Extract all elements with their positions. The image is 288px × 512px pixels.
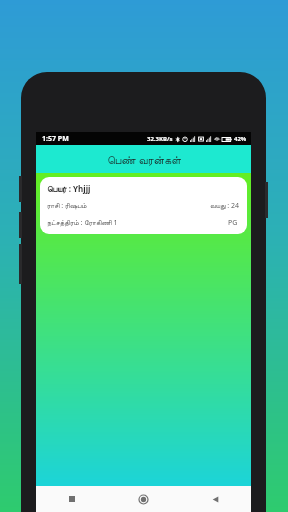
staticText: வயது : 24 bbox=[210, 201, 240, 211]
button[interactable]: பெயர் : Yhjjj bbox=[40, 177, 247, 234]
staticText: பெண் வரன்கள் bbox=[107, 152, 181, 167]
button[interactable]: Home bbox=[107, 486, 179, 512]
button[interactable]: Back bbox=[179, 486, 251, 512]
staticText: நட்சத்திரம் : ரோகிணி 1 bbox=[47, 218, 118, 228]
staticText: ராசி : ரிஷபம் bbox=[47, 201, 87, 211]
staticText: பெயர் : Yhjjj bbox=[47, 183, 91, 194]
staticText: 42% bbox=[234, 135, 247, 143]
staticText: 1:57 PM bbox=[42, 134, 69, 144]
button[interactable]: Recents bbox=[36, 486, 107, 512]
staticText: 32.3KB/s bbox=[147, 135, 173, 143]
staticText: PG bbox=[228, 218, 238, 228]
